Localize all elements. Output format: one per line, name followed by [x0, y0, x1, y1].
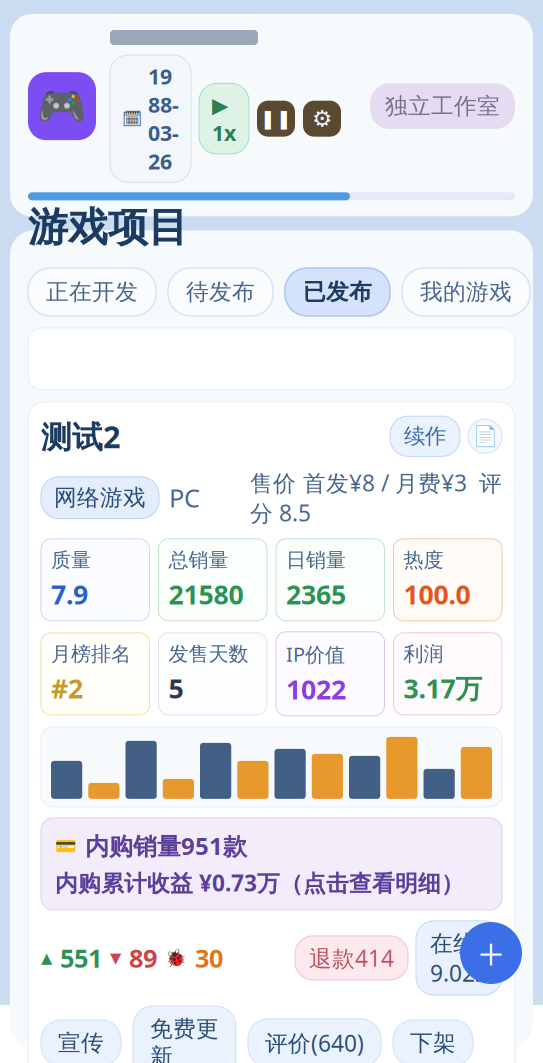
- staticText: 100.0: [403, 576, 470, 612]
- staticText: 退款414: [309, 943, 394, 973]
- staticText: 内购销量951款: [85, 830, 247, 862]
- button[interactable]: 免费更新: [133, 1006, 236, 1063]
- staticText: IP价值: [286, 641, 345, 667]
- staticText: 内购累计收益 ¥0.73万（点击查看明细）: [55, 868, 464, 898]
- staticText: 月榜排名: [51, 642, 131, 666]
- staticText: PC: [169, 481, 200, 514]
- staticText: 日销量: [286, 548, 346, 572]
- button[interactable]: Settings: [303, 101, 341, 137]
- staticText: 发售天数: [168, 642, 248, 666]
- staticText: #2: [51, 670, 83, 706]
- staticText: 评价(640): [265, 1028, 364, 1058]
- button[interactable]: 待发布: [168, 268, 273, 316]
- button[interactable]: 正在开发: [28, 268, 156, 316]
- staticText: 质量: [51, 548, 91, 572]
- staticText: 宣传: [58, 1029, 104, 1057]
- button[interactable]: 🗓: [110, 55, 191, 182]
- staticText: 续作: [404, 423, 446, 449]
- button[interactable]: Add: [460, 922, 522, 984]
- staticText: 利润: [403, 642, 443, 666]
- button[interactable]: 💳: [41, 818, 502, 910]
- staticText: 30: [195, 941, 223, 975]
- staticText: 售价 首发¥8 / 月费¥3 评分 8.5: [250, 468, 502, 528]
- staticText: 21580: [168, 576, 243, 612]
- staticText: 💳: [55, 836, 77, 856]
- staticText: 2365: [286, 576, 346, 612]
- staticText: 热度: [403, 548, 443, 572]
- staticText: 游戏项目: [28, 203, 188, 252]
- staticText: 在线 9.022: [430, 928, 488, 988]
- staticText: 🗓: [122, 109, 142, 128]
- button[interactable]: 独立工作室: [370, 83, 515, 129]
- button[interactable]: Details: [468, 419, 502, 453]
- staticText: 独立工作室: [385, 92, 500, 120]
- staticText: 已发布: [303, 278, 372, 306]
- staticText: 7.9: [51, 576, 88, 612]
- button[interactable]: 我的游戏: [402, 268, 530, 316]
- staticText: 1022: [286, 671, 346, 707]
- button[interactable]: ▶ 1x: [199, 83, 249, 154]
- staticText: 下架: [410, 1029, 456, 1057]
- staticText: 总销量: [168, 548, 228, 572]
- staticText: 551: [60, 941, 102, 975]
- button[interactable]: 已发布: [285, 268, 390, 316]
- button[interactable]: 评价(640): [248, 1019, 381, 1063]
- button[interactable]: Pause: [257, 101, 295, 137]
- staticText: +: [478, 923, 504, 983]
- staticText: ▲: [41, 950, 52, 966]
- staticText: 正在开发: [46, 278, 138, 306]
- staticText: 1988-03-26: [148, 62, 179, 175]
- staticText: 5: [168, 670, 183, 706]
- button[interactable]: 宣传: [41, 1020, 121, 1063]
- staticText: 3.17万: [403, 670, 482, 706]
- staticText: 网络游戏: [54, 484, 146, 512]
- staticText: ❚❚: [260, 108, 292, 129]
- staticText: 我的游戏: [420, 278, 512, 306]
- staticText: 📄: [472, 425, 497, 448]
- staticText: 待发布: [186, 278, 255, 306]
- staticText: 🐞: [165, 948, 187, 968]
- staticText: 🎮: [37, 83, 87, 129]
- staticText: 免费更新: [150, 1015, 219, 1063]
- staticText: ⚙: [312, 106, 332, 131]
- staticText: ▶ 1x: [212, 90, 236, 147]
- button[interactable]: 续作: [390, 416, 460, 456]
- staticText: ▼: [110, 950, 121, 966]
- button[interactable]: 下架: [393, 1020, 473, 1063]
- staticText: 89: [129, 941, 157, 975]
- staticText: 测试2: [41, 416, 121, 457]
